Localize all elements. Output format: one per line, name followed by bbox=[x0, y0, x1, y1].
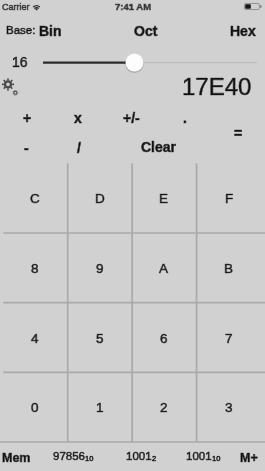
staticText: 0 bbox=[31, 400, 39, 415]
staticText: 8 bbox=[31, 261, 39, 276]
staticText: 1 bbox=[96, 400, 104, 415]
button[interactable]: Mem bbox=[0, 447, 33, 468]
button[interactable]: . bbox=[170, 107, 200, 129]
staticText: 1001 bbox=[126, 450, 152, 463]
button[interactable]: C bbox=[3, 163, 67, 233]
staticText: 9 bbox=[96, 261, 104, 276]
staticText: 5 bbox=[96, 331, 104, 346]
staticText: B bbox=[224, 261, 234, 276]
button[interactable]: Oct bbox=[128, 21, 164, 41]
staticText: Hex bbox=[230, 23, 256, 39]
button[interactable]: x bbox=[63, 107, 93, 129]
staticText: = bbox=[234, 125, 243, 141]
staticText: Base: bbox=[6, 24, 36, 37]
staticText: Base: bbox=[6, 24, 36, 37]
button[interactable]: + bbox=[12, 107, 42, 129]
staticText: 9 bbox=[96, 261, 104, 276]
staticText: 10 bbox=[85, 454, 94, 462]
staticText: 7:41 AM bbox=[115, 1, 152, 12]
staticText: F bbox=[225, 191, 234, 206]
staticText: / bbox=[77, 140, 81, 156]
staticText: Carrier bbox=[2, 2, 30, 12]
staticText: 7:41 AM bbox=[115, 1, 152, 12]
staticText: 0 bbox=[31, 400, 39, 415]
staticText: A bbox=[159, 261, 169, 276]
button[interactable]: 5 bbox=[68, 303, 132, 373]
staticText: 3 bbox=[225, 400, 233, 415]
staticText: D bbox=[95, 191, 105, 206]
staticText: 4 bbox=[31, 331, 39, 346]
staticText: Carrier bbox=[2, 2, 30, 12]
staticText: 10 bbox=[212, 454, 221, 462]
button[interactable]: 6 bbox=[132, 303, 196, 373]
button[interactable]: 8 bbox=[3, 233, 67, 303]
staticText: 5 bbox=[96, 331, 104, 346]
staticText: 3 bbox=[225, 400, 233, 415]
staticText: D bbox=[95, 191, 105, 206]
staticText: Hex bbox=[230, 23, 256, 39]
staticText: Clear bbox=[141, 139, 177, 155]
button[interactable]: E bbox=[132, 163, 196, 233]
staticText: 1001 bbox=[126, 450, 152, 463]
staticText: 10 bbox=[212, 454, 221, 462]
staticText: 7 bbox=[225, 331, 233, 346]
staticText: +/- bbox=[123, 110, 140, 126]
button[interactable]: 1 bbox=[68, 372, 132, 442]
staticText: Bin bbox=[39, 23, 62, 39]
staticText: M+ bbox=[240, 451, 258, 465]
staticText: 17E40 bbox=[182, 73, 252, 100]
staticText: / bbox=[77, 140, 81, 156]
button[interactable]: - bbox=[11, 137, 41, 159]
button[interactable]: = bbox=[223, 122, 253, 144]
staticText: F bbox=[225, 191, 234, 206]
staticText: Mem bbox=[2, 451, 31, 465]
button[interactable]: +/- bbox=[114, 107, 148, 129]
staticText: +/- bbox=[123, 110, 140, 126]
button[interactable]: F bbox=[197, 163, 261, 233]
button[interactable]: A bbox=[132, 233, 196, 303]
staticText: Oct bbox=[134, 23, 158, 39]
staticText: C bbox=[30, 191, 40, 206]
staticText: . bbox=[183, 110, 187, 126]
staticText: - bbox=[24, 140, 29, 156]
staticText: 6 bbox=[160, 331, 168, 346]
staticText: 8 bbox=[31, 261, 39, 276]
button[interactable]: D bbox=[68, 163, 132, 233]
button[interactable]: M+ bbox=[237, 447, 261, 468]
staticText: E bbox=[159, 191, 169, 206]
staticText: 2 bbox=[160, 400, 168, 415]
staticText: 4 bbox=[31, 331, 39, 346]
button[interactable]: 4 bbox=[3, 303, 67, 373]
staticText: 7 bbox=[225, 331, 233, 346]
staticText: + bbox=[23, 110, 32, 126]
staticText: - bbox=[24, 140, 29, 156]
staticText: = bbox=[234, 125, 243, 141]
staticText: Bin bbox=[39, 23, 62, 39]
staticText: Mem bbox=[2, 451, 31, 465]
button[interactable]: Clear bbox=[137, 136, 181, 158]
button[interactable]: / bbox=[64, 137, 94, 159]
button[interactable]: Bin bbox=[32, 21, 68, 41]
button[interactable]: 2 bbox=[132, 372, 196, 442]
button[interactable]: B bbox=[197, 233, 261, 303]
staticText: Clear bbox=[141, 139, 177, 155]
staticText: M+ bbox=[240, 451, 258, 465]
button[interactable]: Hex bbox=[225, 21, 261, 41]
staticText: 10 bbox=[85, 454, 94, 462]
button[interactable]: 9 bbox=[68, 233, 132, 303]
staticText: x bbox=[74, 110, 82, 126]
button[interactable]: Settings bbox=[0, 74, 26, 100]
button[interactable]: 7 bbox=[197, 303, 261, 373]
staticText: 6 bbox=[160, 331, 168, 346]
staticText: 1 bbox=[96, 400, 104, 415]
button[interactable]: 0 bbox=[3, 372, 67, 442]
button[interactable]: 3 bbox=[197, 372, 261, 442]
staticText: 2 bbox=[152, 454, 157, 462]
staticText: . bbox=[183, 110, 187, 126]
staticText: 1001 bbox=[186, 450, 212, 463]
staticText: 2 bbox=[160, 400, 168, 415]
staticText: + bbox=[23, 110, 32, 126]
staticText: A bbox=[159, 261, 169, 276]
staticText: 16 bbox=[12, 54, 28, 70]
staticText: E bbox=[159, 191, 169, 206]
